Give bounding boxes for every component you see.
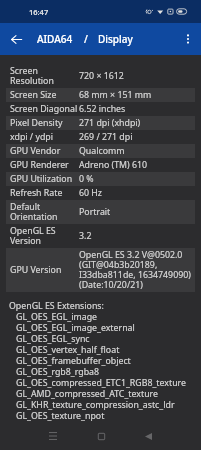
button[interactable]: GPU Utilization — [6, 172, 195, 186]
staticText: 68 mm × 151 mm — [79, 90, 152, 100]
staticText: 269 / 271 dpi — [79, 132, 133, 142]
staticText: GPU Vendor — [10, 146, 79, 156]
staticText: 720 × 1612 — [79, 71, 124, 81]
staticText: Qualcomm — [79, 146, 125, 156]
staticText: 16:47 — [29, 7, 49, 17]
staticText: GPU Renderer — [10, 160, 79, 170]
staticText: AIDA64 — [37, 32, 73, 46]
staticText: Refresh Rate — [10, 188, 79, 198]
staticText: OpenGL ES 3.2 V@0502.0 (GIT@04b3b20189, … — [79, 250, 191, 290]
button[interactable]: Screen Diagonal — [6, 102, 195, 116]
button[interactable]: GPU Renderer — [6, 158, 195, 172]
button[interactable]: xdpi / ydpi — [6, 130, 195, 144]
button[interactable]: Navigate up — [0, 23, 32, 55]
staticText: GPU Utilization — [10, 174, 79, 184]
button[interactable]: OpenGL ES Version — [6, 224, 195, 248]
staticText: Screen Resolution — [10, 66, 79, 86]
button[interactable]: Recent apps — [41, 422, 65, 450]
staticText: 271 dpi (xhdpi) — [79, 118, 141, 128]
staticText: 60 Hz — [79, 188, 103, 198]
staticText: 3.2 — [79, 231, 92, 241]
button[interactable]: Screen Size — [6, 88, 195, 102]
button[interactable]: Home — [89, 422, 113, 450]
button[interactable]: Default Orientation — [6, 200, 195, 224]
button[interactable]: Back — [136, 422, 160, 450]
staticText: 0 % — [79, 174, 94, 184]
staticText: Default Orientation — [10, 202, 79, 222]
staticText: xdpi / ydpi — [10, 132, 79, 142]
button[interactable]: More options — [175, 26, 201, 52]
staticText: OpenGL ES Extensions: — [9, 300, 104, 311]
staticText: / — [84, 32, 88, 46]
staticText: GPU Version — [10, 265, 79, 275]
staticText: Display — [98, 32, 133, 46]
staticText: Adreno (TM) 610 — [79, 160, 148, 170]
button[interactable]: Screen Resolution — [6, 64, 195, 88]
staticText: 6.52 inches — [79, 104, 126, 114]
button[interactable]: GPU Version — [6, 248, 195, 292]
staticText: Portrait — [79, 207, 111, 217]
staticText: Screen Size — [10, 90, 79, 100]
staticText: Pixel Density — [10, 118, 79, 128]
staticText: GL_OES_EGL_image GL_OES_EGL_image_extern… — [16, 311, 187, 421]
staticText: OpenGL ES Version — [10, 226, 79, 246]
button[interactable]: Pixel Density — [6, 116, 195, 130]
staticText: Screen Diagonal — [10, 104, 79, 114]
button[interactable]: Refresh Rate — [6, 186, 195, 200]
button[interactable]: GPU Vendor — [6, 144, 195, 158]
